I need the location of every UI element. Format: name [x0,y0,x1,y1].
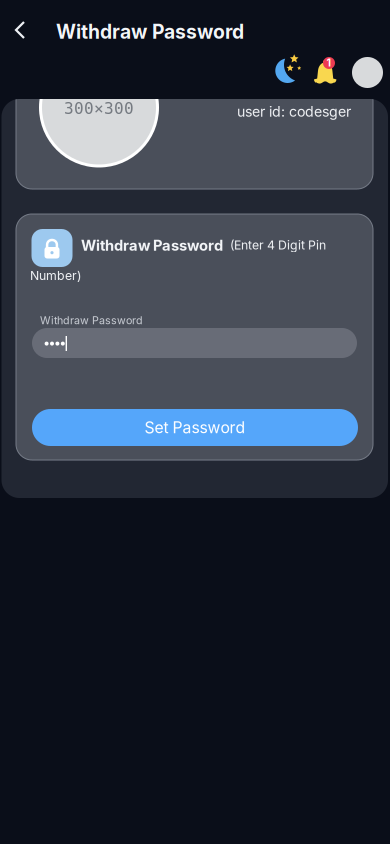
button[interactable]: Back [0,10,40,50]
staticText: (Enter 4 Digit Pin [230,237,326,252]
staticText: 1 [326,56,331,69]
button[interactable]: Notifications [310,56,344,90]
staticText: Withdraw Password [40,314,143,327]
staticText: Number) [30,268,81,283]
staticText: Withdraw Password [56,20,244,43]
staticText: Withdraw Password [81,236,223,254]
staticText: user id: codesger [237,103,351,120]
button[interactable]: Set Password [32,409,358,446]
button[interactable]: Account [352,57,383,88]
staticText: 300×300 [64,99,134,118]
button[interactable]: Toggle dark mode [271,54,305,88]
staticText: Set Password [144,418,245,437]
